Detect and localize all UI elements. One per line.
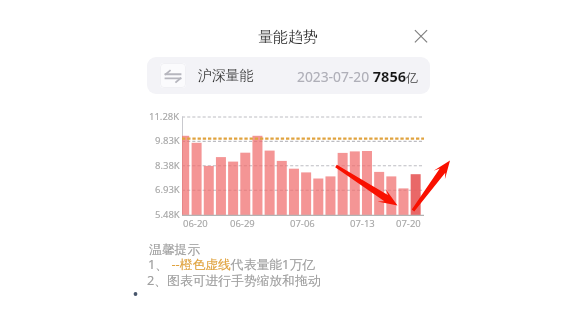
staticText: 07-13 [350,217,375,230]
staticText: 6.93K [155,183,180,196]
staticText: 07-20 [396,217,421,230]
staticText: 06-20 [183,217,208,230]
staticText: 2、图表可进行手势缩放和拖动 [147,271,321,288]
staticText: 1、 --橙色虚线代表量能1万亿 [148,255,315,272]
button[interactable]: 量能趋势 [258,28,318,47]
staticText: 06-29 [230,217,255,230]
staticText: 2023-07-20 7856亿 [297,66,418,86]
staticText: 温馨提示 [149,242,201,258]
staticText: 量能趋势 [258,28,318,47]
staticText: 5.48K [155,208,180,221]
staticText: 8.38K [155,159,180,172]
staticText: 07-06 [290,217,315,230]
staticText: 11.28K [149,110,180,123]
button[interactable]: Close [407,22,435,50]
staticText: 9.83K [155,134,180,147]
button[interactable]: 沪深量能 [147,57,430,94]
staticText: 沪深量能 [198,67,254,84]
